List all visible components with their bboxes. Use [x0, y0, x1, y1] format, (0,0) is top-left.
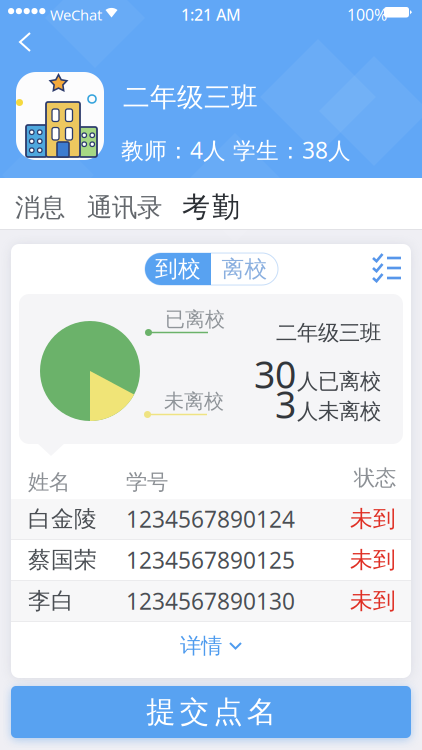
- staticText: 二年级三班: [276, 320, 381, 346]
- staticText: 考勤: [182, 190, 240, 224]
- staticText: WeChat: [50, 5, 102, 24]
- staticText: 未到: [350, 587, 396, 615]
- button[interactable]: 离校: [211, 253, 278, 285]
- staticText: 提交点名: [146, 694, 276, 730]
- button[interactable]: 到校: [145, 253, 211, 285]
- staticText: 详情: [180, 633, 222, 659]
- staticText: 李白: [28, 587, 74, 615]
- staticText: 教师：4人: [121, 135, 226, 165]
- staticText: 人未离校: [297, 398, 381, 424]
- button[interactable]: 通讯录: [87, 192, 162, 223]
- staticText: 人已离校: [297, 368, 381, 394]
- staticText: 已离校: [165, 307, 225, 332]
- staticText: 白金陵: [28, 505, 97, 533]
- staticText: 通讯录: [87, 192, 162, 223]
- button[interactable]: Attendance list: [372, 254, 402, 282]
- staticText: 到校: [155, 255, 201, 283]
- staticText: 1234567890125: [126, 545, 295, 575]
- button[interactable]: 蔡国荣: [11, 540, 411, 580]
- button[interactable]: 详情: [11, 628, 411, 664]
- staticText: 30: [254, 349, 296, 399]
- staticText: 消息: [15, 192, 65, 223]
- staticText: 未到: [350, 505, 396, 533]
- staticText: 100%: [347, 4, 387, 25]
- staticText: 学生：38人: [233, 135, 351, 165]
- staticText: 3: [275, 379, 296, 429]
- staticText: 状态: [354, 465, 396, 491]
- staticText: 1234567890130: [126, 586, 295, 616]
- staticText: 1:21 AM: [181, 4, 241, 25]
- staticText: 二年级三班: [123, 81, 258, 114]
- staticText: 离校: [221, 255, 267, 283]
- button[interactable]: Back: [10, 28, 40, 56]
- button[interactable]: 考勤: [182, 190, 240, 224]
- button[interactable]: 提交点名: [11, 686, 411, 738]
- staticText: 未离校: [164, 389, 224, 414]
- button[interactable]: 李白: [11, 581, 411, 621]
- staticText: 蔡国荣: [28, 546, 97, 574]
- button[interactable]: 白金陵: [11, 499, 411, 539]
- staticText: 学号: [126, 469, 168, 495]
- button[interactable]: 消息: [15, 192, 65, 223]
- staticText: 1234567890124: [126, 504, 295, 534]
- staticText: 姓名: [28, 469, 70, 495]
- staticText: 未到: [350, 546, 396, 574]
